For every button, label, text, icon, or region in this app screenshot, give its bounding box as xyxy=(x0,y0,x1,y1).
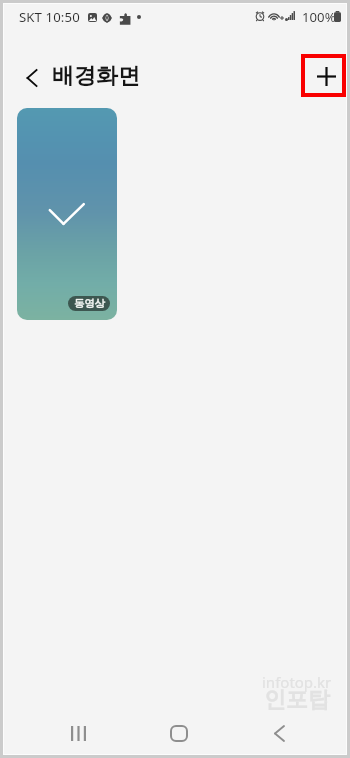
button[interactable]: 동영상 xyxy=(17,108,117,320)
staticText: 배경화면 xyxy=(52,62,140,90)
button[interactable]: Back xyxy=(246,709,313,757)
staticText: infotop.kr xyxy=(262,672,332,692)
staticText: 동영상 xyxy=(74,297,105,310)
button[interactable]: Home xyxy=(145,709,212,757)
staticText: 100% xyxy=(302,8,336,26)
button[interactable]: Add xyxy=(301,54,346,97)
staticText: 인포탑 xyxy=(264,686,330,714)
button[interactable]: Back xyxy=(13,55,51,101)
staticText: SKT 10:50 xyxy=(19,8,80,26)
button[interactable]: Recent apps xyxy=(45,709,112,757)
